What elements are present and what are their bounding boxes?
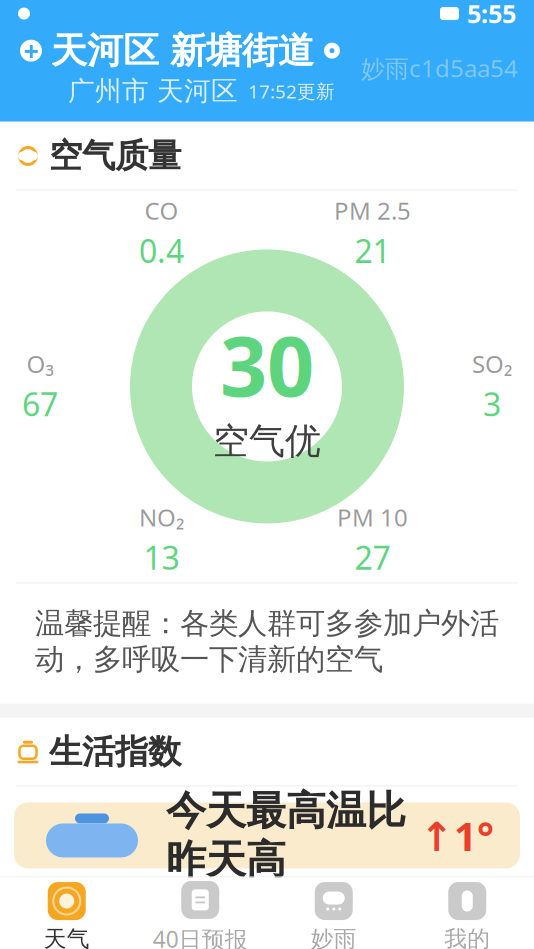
staticText: 3 [483,383,501,425]
staticText: 天河区 新塘街道 [51,28,314,73]
staticText: O₃ [26,348,53,380]
button[interactable]: 我的 [400,875,534,949]
staticText: PM 10 [337,501,408,533]
staticText: 天气 [44,925,90,949]
button[interactable]: 40日预报 [133,874,267,949]
staticText: 27 [354,536,390,578]
staticText: 今天最高温比昨天高 [166,786,406,885]
staticText: 67 [22,383,58,425]
staticText: 空气质量 [49,135,181,176]
staticText: 40日预报 [153,924,248,949]
staticText: + [23,33,38,68]
staticText: 妙雨c1d5aa54 [361,52,518,84]
staticText: 13 [143,536,179,578]
staticText: 0.4 [139,229,184,272]
staticText: CO [144,194,178,226]
staticText: 21 [354,229,390,272]
button[interactable]: 天气 [0,875,133,949]
staticText: NO₂ [139,501,184,533]
staticText: 生活指数 [49,731,181,772]
staticText: ↑1° [406,809,494,862]
staticText: PM 2.5 [334,194,411,226]
staticText: 妙雨 [311,925,357,949]
staticText: 30 [220,309,314,419]
button[interactable]: 妙雨 [267,875,400,949]
staticText: SO₂ [472,348,512,380]
staticText: 5:55 [467,0,516,30]
button[interactable]: 今天最高温比昨天高 [0,786,534,868]
staticText: 17:52更新 [248,79,335,103]
staticText: 我的 [444,925,490,949]
staticText: 空气优 [213,419,321,463]
staticText: 温馨提醒：各类人群可多参加户外活动，多呼吸一下清新的空气 [35,605,499,678]
staticText: 广州市 天河区 [20,75,238,108]
